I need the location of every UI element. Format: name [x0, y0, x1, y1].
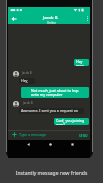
button[interactable]: Hey man	[74, 59, 89, 66]
staticText: Type a message	[19, 132, 79, 137]
staticText: Not much, just about to hop onto my comp…	[31, 88, 79, 97]
button[interactable]: SEND	[79, 133, 88, 137]
staticText: Awesome. I sent you a request on Steam	[21, 108, 83, 114]
button[interactable]: Cool, you joining now?	[54, 118, 89, 125]
button[interactable]: Recent apps	[67, 139, 77, 149]
staticText: Hey, what's up?	[21, 78, 34, 84]
button[interactable]: Not much, just about to hop onto my comp…	[21, 87, 89, 98]
staticText: Jacob B.	[23, 101, 34, 105]
staticText: Hey man	[76, 59, 87, 66]
button[interactable]: More options	[83, 14, 92, 23]
button[interactable]: Back	[23, 139, 33, 149]
button[interactable]: Home	[45, 139, 55, 149]
button[interactable]: Hey, what's up?	[19, 78, 35, 84]
staticText: SEND	[79, 133, 88, 137]
staticText: Cool, you joining now?	[56, 118, 87, 125]
staticText: Online	[47, 21, 56, 25]
staticText: Instantly message new friends	[0, 170, 103, 177]
button[interactable]: Back	[9, 14, 19, 24]
staticText: Jacob B.	[22, 71, 33, 75]
button[interactable]: Awesome. I sent you a request on Steam	[19, 108, 84, 114]
button[interactable]: Add attachment	[11, 131, 18, 138]
staticText: Jacob B.	[43, 15, 59, 21]
